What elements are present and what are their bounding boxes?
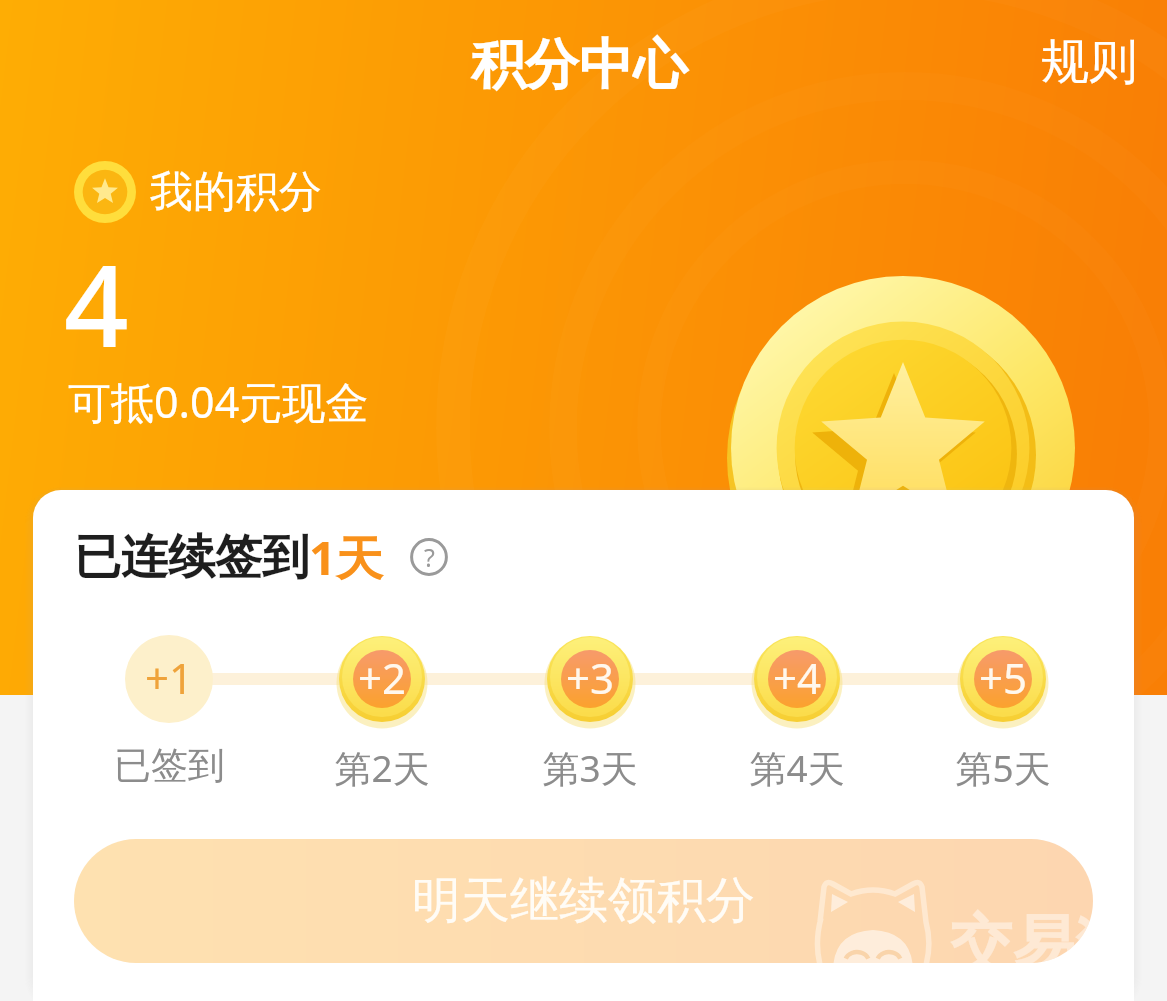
staticText: 可抵0.04元现金 [68,372,369,431]
staticText: 明天继续领积分 [412,870,755,932]
button[interactable]: 规则 [1017,22,1167,110]
button[interactable]: 签到规则说明 [410,538,448,576]
staticText: 第5天 [955,742,1051,793]
staticText: +2 [358,649,407,706]
staticText: 积分中心 [471,31,687,99]
button[interactable]: +3 [542,631,638,727]
staticText: 4 [64,226,129,380]
staticText: +3 [566,649,615,706]
button[interactable]: 交易猫 [74,839,1093,963]
staticText: 已签到 [114,742,225,789]
staticText: +5 [979,649,1028,706]
staticText: 已连续签到 [74,528,309,587]
staticText: 第2天 [334,742,430,793]
staticText: ? [424,540,435,574]
staticText: 我的积分 [150,165,322,219]
staticText: 第3天 [542,742,638,793]
button[interactable]: +5 [955,631,1051,727]
staticText: +1 [145,649,194,706]
button[interactable]: +2 [334,631,430,727]
staticText: +4 [773,649,822,706]
staticText: 1天 [309,525,383,589]
button[interactable]: +1 [121,631,217,727]
staticText: 交易猫 [950,905,1093,963]
button[interactable]: 我的积分 [74,161,322,223]
button[interactable]: +4 [749,631,845,727]
staticText: 第4天 [749,742,845,793]
staticText: 规则 [1041,32,1137,92]
